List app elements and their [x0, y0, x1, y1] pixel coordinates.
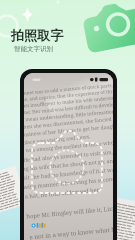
staticText: 智能文字识别 — [14, 45, 53, 53]
staticText: 拍照取字 — [11, 27, 64, 43]
